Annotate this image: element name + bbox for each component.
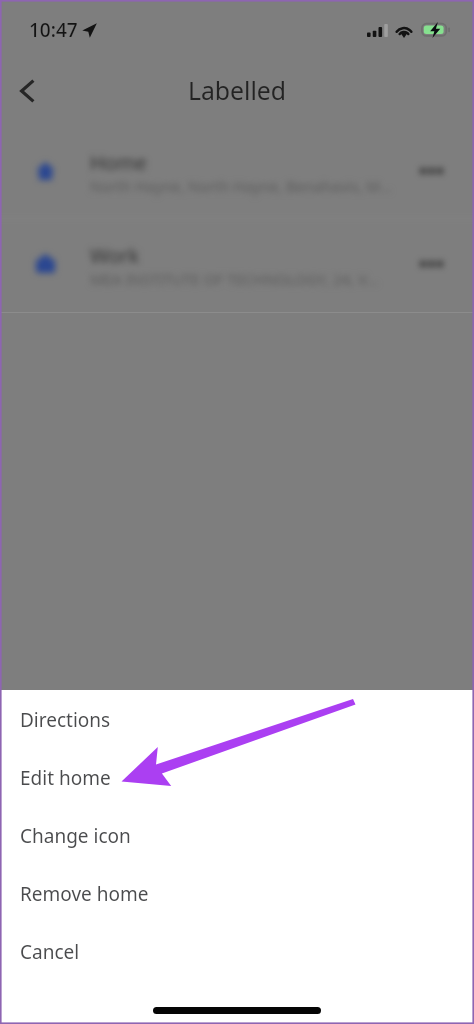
button[interactable]: Change icon <box>0 807 474 865</box>
staticText: Remove home <box>20 881 149 907</box>
staticText: Directions <box>20 707 111 733</box>
staticText: Edit home <box>20 765 111 791</box>
staticText: 10:47 <box>29 17 78 43</box>
button[interactable]: Directions <box>0 691 474 749</box>
staticText: Work <box>90 242 140 269</box>
staticText: Cancel <box>20 939 80 965</box>
staticText: Home <box>90 149 147 176</box>
button[interactable]: More options <box>415 248 447 280</box>
button[interactable]: Work <box>0 219 474 313</box>
button[interactable]: Edit home <box>0 749 474 807</box>
staticText: North Hayne, North Hayne, Benahavis, M… <box>90 176 392 196</box>
button[interactable]: Home <box>0 124 474 218</box>
staticText: MEA INSTITUTE OF TECHNOLOGY, 24, V… <box>90 269 379 289</box>
button[interactable]: Cancel <box>0 923 474 981</box>
button[interactable]: Remove home <box>0 865 474 923</box>
staticText: Labelled <box>0 73 474 107</box>
button[interactable]: More options <box>415 155 447 187</box>
staticText: Change icon <box>20 823 131 849</box>
button[interactable]: Back <box>3 67 51 115</box>
